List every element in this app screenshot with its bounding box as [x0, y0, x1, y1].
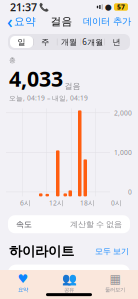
button[interactable]: 속도	[8, 215, 130, 233]
staticText: 4,033	[9, 64, 63, 92]
staticText: 2,000	[114, 108, 132, 117]
staticText: 걸음	[27, 271, 43, 280]
staticText: 오늘, 04:19 – 내일, 04:19	[9, 93, 88, 102]
button[interactable]: ♥	[0, 272, 46, 293]
staticText: ●	[105, 2, 112, 12]
staticText: 개월	[61, 37, 77, 47]
staticText: 주	[41, 37, 49, 47]
button[interactable]: 일	[10, 36, 33, 48]
staticText: 모두 보기	[95, 246, 129, 256]
button[interactable]: 년	[105, 36, 128, 48]
staticText: ♥	[17, 272, 28, 285]
staticText: 하이라이트	[9, 243, 74, 260]
staticText: 일	[18, 37, 26, 47]
staticText: 걸음	[50, 15, 72, 28]
button[interactable]: 모두 보기	[95, 246, 129, 256]
staticText: 총	[9, 56, 16, 64]
button[interactable]: 데이터 추가	[83, 13, 131, 30]
staticText: 계산할 수 없음	[70, 219, 122, 229]
staticText: 👥	[61, 272, 76, 286]
staticText: 현재까지 하루당 걸음 수가 평소보다 늘었습니다.	[15, 283, 119, 299]
staticText: 6개월	[82, 37, 103, 47]
staticText: ‹	[7, 10, 13, 33]
staticText: 걸음	[64, 81, 80, 91]
staticText: 57	[117, 3, 125, 11]
button[interactable]: 🔥	[8, 265, 130, 299]
staticText: 년	[112, 37, 120, 47]
staticText: 6시	[20, 198, 31, 207]
staticText: 12시	[49, 198, 64, 207]
staticText: 요약	[18, 286, 28, 293]
button[interactable]: 6개월	[81, 36, 104, 48]
staticText: 속도	[16, 219, 32, 229]
staticText: 0	[128, 187, 132, 196]
staticText: 요약	[14, 15, 36, 28]
staticText: 0시	[111, 198, 122, 207]
button[interactable]: 주	[34, 36, 57, 48]
button[interactable]: ‹	[7, 7, 40, 36]
button[interactable]: 개월	[57, 36, 81, 48]
staticText: 공유	[64, 287, 74, 293]
button[interactable]: 👥	[46, 272, 92, 293]
staticText: 둘러보기	[105, 286, 125, 293]
staticText: 1,000	[114, 148, 132, 157]
button[interactable]: ▦	[92, 272, 138, 293]
staticText: 데이터 추가	[83, 16, 131, 27]
staticText: 18시	[80, 198, 95, 207]
staticText: ▦	[109, 272, 120, 285]
staticText: 📞	[37, 2, 49, 12]
staticText: 21:37	[10, 0, 37, 14]
staticText: 🔥	[15, 271, 25, 280]
